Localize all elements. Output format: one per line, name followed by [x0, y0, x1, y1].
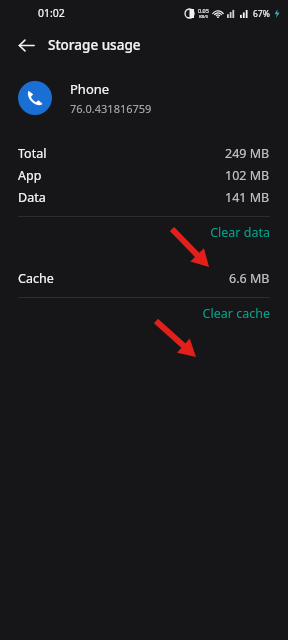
button[interactable]: Cache	[0, 267, 288, 289]
staticText: 67%	[253, 8, 270, 20]
button[interactable]: Phone	[18, 80, 270, 116]
button[interactable]: Total	[0, 142, 288, 164]
staticText: Total	[18, 145, 47, 162]
staticText: App	[18, 167, 42, 184]
staticText: 0.05	[198, 7, 209, 14]
staticText: Data	[18, 189, 46, 206]
staticText: 102 MB	[225, 167, 270, 184]
staticText: 76.0.431816759	[70, 101, 152, 116]
button[interactable]: App	[0, 164, 288, 186]
button[interactable]: Back	[10, 29, 42, 61]
staticText: Phone	[70, 80, 110, 98]
button[interactable]: Data	[0, 186, 288, 208]
staticText: KB/S	[199, 14, 209, 20]
button[interactable]: Clear data	[192, 220, 288, 245]
staticText: Cache	[18, 270, 54, 287]
staticText: Storage usage	[48, 36, 141, 54]
staticText: 6.6 MB	[229, 270, 270, 287]
staticText: 141 MB	[225, 189, 270, 206]
staticText: Clear cache	[202, 305, 270, 322]
button[interactable]: Clear cache	[184, 301, 288, 326]
staticText: Clear data	[210, 224, 270, 241]
staticText: 249 MB	[225, 145, 270, 162]
staticText: 01:02	[38, 6, 65, 20]
